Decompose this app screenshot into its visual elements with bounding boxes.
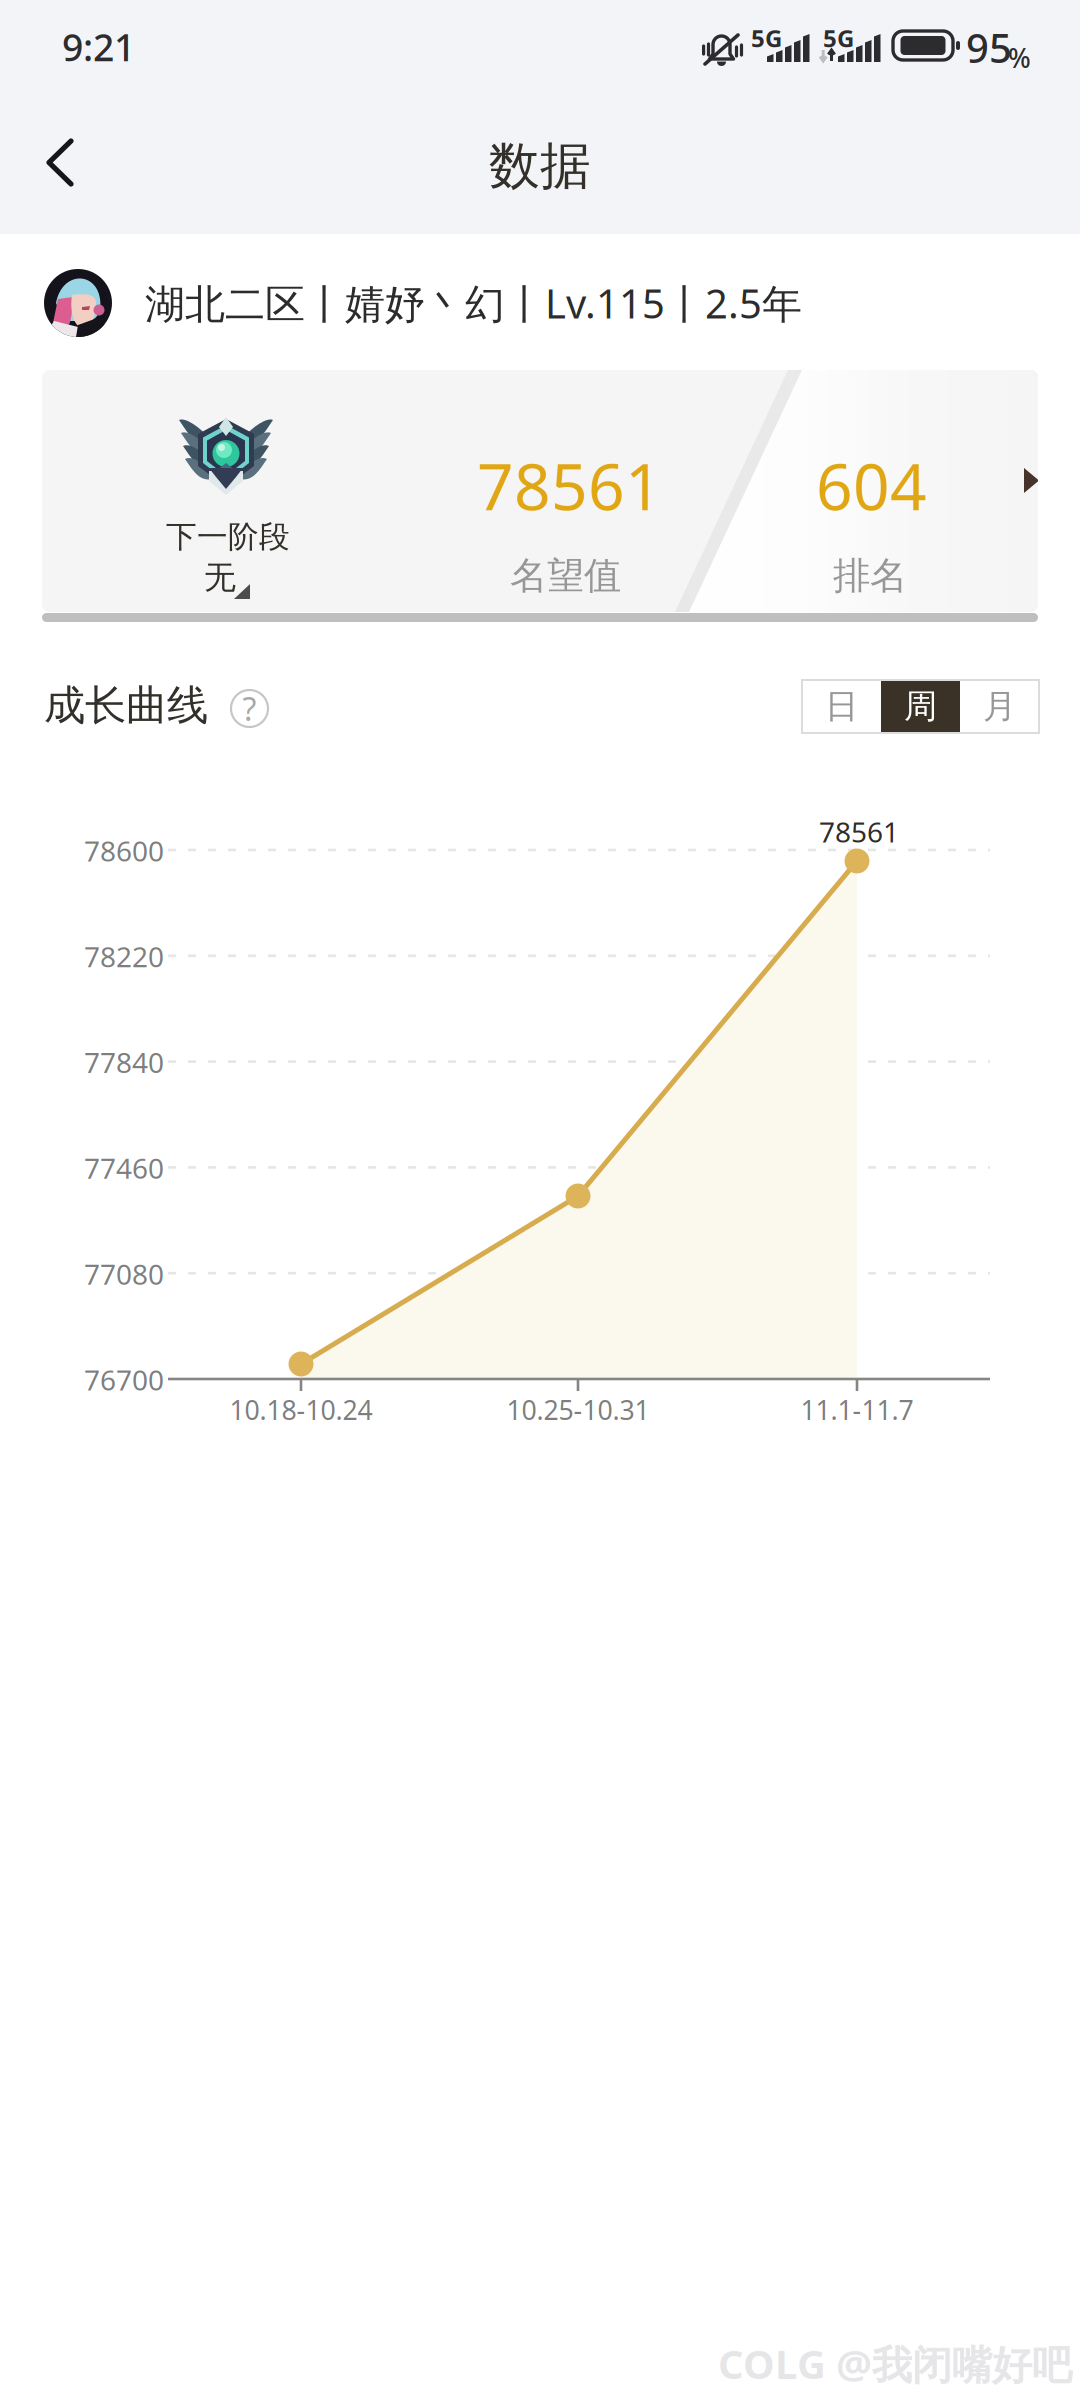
- staticText: COLG @我闭嘴好吧: [718, 2337, 1072, 2390]
- staticText: 5G: [751, 22, 782, 54]
- staticText: 湖北二区丨婧妤丶幻丨Lv.115丨2.5年: [145, 276, 802, 329]
- staticText: 10.18-10.24: [229, 1392, 372, 1427]
- staticText: 77460: [84, 1149, 164, 1187]
- button[interactable]: Help: [231, 690, 268, 727]
- staticText: 月: [983, 686, 1016, 727]
- staticText: 77080: [84, 1255, 164, 1292]
- button[interactable]: 湖北二区丨婧妤丶幻丨Lv.115丨2.5年: [0, 254, 846, 352]
- staticText: %: [1008, 40, 1031, 75]
- button[interactable]: Back: [19, 115, 101, 210]
- staticText: 78561: [477, 443, 662, 528]
- staticText: 95: [966, 21, 1012, 74]
- staticText: 11.1-11.7: [800, 1392, 913, 1427]
- staticText: 下一阶段: [166, 518, 290, 556]
- staticText: 5G: [823, 22, 854, 54]
- staticText: 日: [825, 686, 858, 727]
- staticText: 9:21: [62, 22, 135, 72]
- button[interactable]: 月: [960, 680, 1039, 733]
- staticText: 成长曲线: [44, 680, 208, 731]
- staticText: 77840: [84, 1044, 164, 1081]
- staticText: 排名: [833, 553, 907, 599]
- button[interactable]: 下一阶段: [42, 370, 1038, 612]
- staticText: ?: [242, 687, 256, 730]
- staticText: 78561: [819, 813, 899, 850]
- staticText: 78220: [84, 938, 164, 975]
- button[interactable]: 周: [881, 680, 960, 733]
- staticText: 78600: [84, 832, 164, 869]
- staticText: 76700: [84, 1361, 164, 1398]
- staticText: 604: [816, 443, 927, 528]
- button[interactable]: 日: [802, 680, 881, 733]
- staticText: 周: [904, 686, 937, 727]
- staticText: 10.25-10.31: [506, 1392, 649, 1427]
- staticText: 数据: [489, 135, 591, 197]
- staticText: 名望值: [510, 553, 621, 599]
- staticText: 无: [204, 558, 236, 597]
